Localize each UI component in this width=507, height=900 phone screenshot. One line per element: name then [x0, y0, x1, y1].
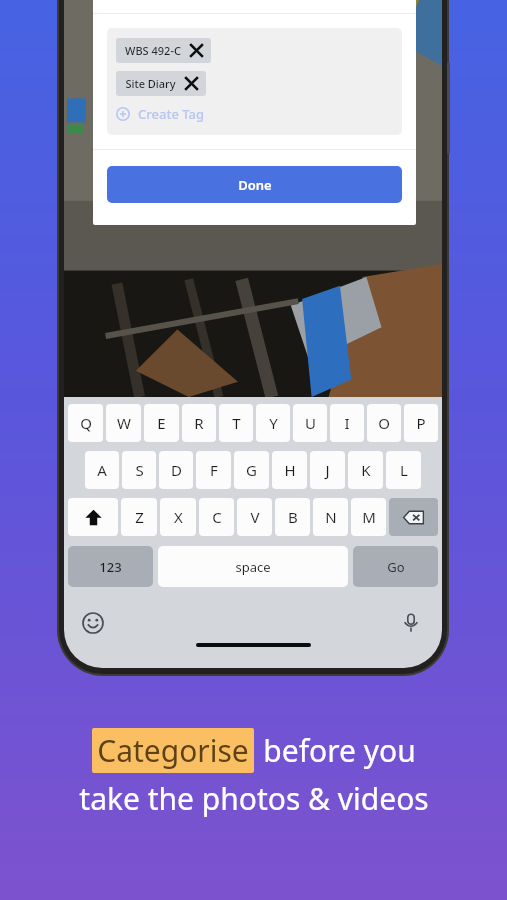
- staticText: F: [210, 460, 218, 480]
- staticText: G: [246, 460, 257, 480]
- button[interactable]: L: [386, 451, 421, 489]
- button[interactable]: Go: [353, 546, 438, 587]
- button[interactable]: V: [237, 498, 272, 536]
- staticText: M: [362, 507, 376, 527]
- staticText: take the photos & videos: [79, 778, 429, 819]
- button[interactable]: U: [293, 404, 327, 442]
- button[interactable]: Z: [121, 498, 157, 536]
- staticText: Y: [269, 413, 278, 433]
- staticText: I: [344, 413, 350, 433]
- button[interactable]: T: [219, 404, 253, 442]
- button[interactable]: Create Tag: [116, 103, 204, 125]
- staticText: C: [212, 507, 222, 527]
- staticText: K: [361, 460, 371, 480]
- staticText: Create Tag: [138, 105, 204, 123]
- staticText: A: [97, 460, 107, 480]
- button[interactable]: Voice input: [396, 608, 426, 638]
- button[interactable]: X: [160, 498, 196, 536]
- staticText: T: [232, 413, 241, 433]
- staticText: space: [235, 558, 271, 576]
- staticText: WBS 492-C: [125, 43, 181, 58]
- staticText: V: [250, 507, 260, 527]
- staticText: S: [135, 460, 144, 480]
- staticText: X: [174, 507, 183, 527]
- button[interactable]: N: [313, 498, 348, 536]
- button[interactable]: P: [404, 404, 438, 442]
- button[interactable]: 123: [68, 546, 153, 587]
- button[interactable]: Emoji: [78, 608, 108, 638]
- staticText: J: [325, 460, 330, 480]
- staticText: U: [305, 413, 316, 433]
- button[interactable]: S: [122, 451, 156, 489]
- staticText: Z: [135, 507, 144, 527]
- staticText: D: [171, 460, 182, 480]
- button[interactable]: F: [196, 451, 231, 489]
- staticText: B: [288, 507, 298, 527]
- button[interactable]: Done: [107, 166, 402, 203]
- staticText: L: [400, 460, 408, 480]
- button[interactable]: G: [234, 451, 269, 489]
- staticText: Categorise: [97, 730, 249, 771]
- staticText: Done: [238, 176, 272, 194]
- staticText: O: [378, 413, 390, 433]
- button[interactable]: A: [85, 451, 119, 489]
- button[interactable]: K: [348, 451, 383, 489]
- button[interactable]: R: [182, 404, 216, 442]
- staticText: R: [194, 413, 204, 433]
- staticText: Site Diary: [125, 76, 176, 91]
- button[interactable]: J: [310, 451, 345, 489]
- button[interactable]: WBS 492-C: [116, 38, 211, 63]
- button[interactable]: O: [367, 404, 401, 442]
- staticText: before you: [263, 730, 416, 771]
- staticText: W: [117, 413, 131, 433]
- button[interactable]: Backspace: [389, 498, 438, 536]
- button[interactable]: Y: [256, 404, 290, 442]
- staticText: Go: [387, 558, 405, 576]
- staticText: Q: [80, 413, 92, 433]
- button[interactable]: Q: [68, 404, 103, 442]
- staticText: E: [157, 413, 166, 433]
- button[interactable]: H: [272, 451, 307, 489]
- button[interactable]: M: [351, 498, 386, 536]
- staticText: H: [284, 460, 296, 480]
- button[interactable]: D: [159, 451, 193, 489]
- button[interactable]: B: [275, 498, 310, 536]
- button[interactable]: space: [158, 546, 348, 587]
- staticText: 123: [99, 558, 122, 576]
- staticText: N: [325, 507, 337, 527]
- button[interactable]: I: [330, 404, 364, 442]
- button[interactable]: Site Diary: [116, 71, 206, 96]
- button[interactable]: E: [144, 404, 179, 442]
- button[interactable]: W: [106, 404, 141, 442]
- staticText: P: [416, 413, 426, 433]
- button[interactable]: C: [199, 498, 234, 536]
- button[interactable]: Shift: [68, 498, 118, 536]
